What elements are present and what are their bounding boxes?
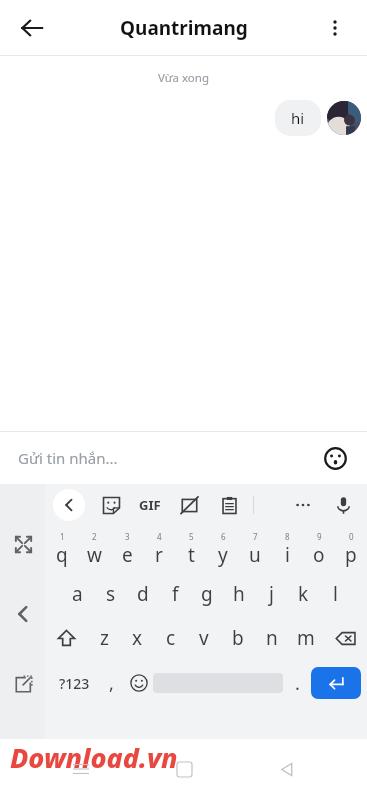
staticText: d xyxy=(137,581,149,607)
staticText: q xyxy=(56,542,68,568)
staticText: o xyxy=(313,542,325,568)
button[interactable]: Enter xyxy=(311,667,361,699)
button[interactable]: More xyxy=(289,491,317,519)
button[interactable]: Expand keyboard xyxy=(5,526,41,562)
button[interactable]: m xyxy=(289,616,323,660)
button[interactable]: , xyxy=(97,660,125,706)
staticText: v xyxy=(199,625,209,651)
button[interactable]: x xyxy=(121,616,154,660)
button[interactable]: g xyxy=(191,572,223,616)
button[interactable]: Shift xyxy=(45,616,88,660)
button[interactable]: . xyxy=(283,660,311,706)
button[interactable]: Translate off xyxy=(175,491,203,519)
staticText: 6 xyxy=(221,531,226,542)
staticText: 3 xyxy=(125,531,130,542)
staticText: u xyxy=(249,542,261,568)
button[interactable]: 0 xyxy=(335,526,367,572)
staticText: 0 xyxy=(349,531,354,542)
button[interactable]: Home xyxy=(163,753,205,785)
button[interactable]: Back xyxy=(8,4,56,52)
button[interactable]: Stickers xyxy=(97,491,125,519)
staticText: r xyxy=(155,542,163,568)
staticText: g xyxy=(201,581,213,607)
staticText: 7 xyxy=(253,531,258,542)
staticText: l xyxy=(333,581,338,607)
staticText: 2 xyxy=(92,531,97,542)
button[interactable]: 4 xyxy=(143,526,175,572)
staticText: h xyxy=(233,581,245,607)
staticText: w xyxy=(87,542,102,568)
staticText: e xyxy=(122,542,133,568)
button[interactable]: 8 xyxy=(271,526,303,572)
staticText: hi xyxy=(291,108,305,128)
button[interactable]: Floating keyboard xyxy=(5,666,41,702)
button[interactable]: z xyxy=(88,616,121,660)
staticText: i xyxy=(285,542,290,568)
button[interactable]: More options xyxy=(311,4,359,52)
button[interactable]: GIF xyxy=(137,491,163,519)
staticText: j xyxy=(269,581,274,607)
button[interactable]: Emoji xyxy=(125,660,153,706)
button[interactable]: Back xyxy=(265,753,307,785)
button[interactable]: 6 xyxy=(207,526,239,572)
button[interactable]: Gửi tin nhắn... xyxy=(18,448,118,468)
staticText: a xyxy=(72,581,83,607)
button[interactable]: f xyxy=(159,572,191,616)
button[interactable]: d xyxy=(127,572,159,616)
staticText: p xyxy=(345,542,357,568)
button[interactable]: j xyxy=(255,572,287,616)
button[interactable]: s xyxy=(94,572,127,616)
staticText: f xyxy=(172,581,179,607)
staticText: 8 xyxy=(285,531,290,542)
staticText: , xyxy=(109,671,114,696)
button[interactable]: Voice input xyxy=(329,491,357,519)
button[interactable]: 2 xyxy=(78,526,111,572)
button[interactable]: b xyxy=(221,616,255,660)
button[interactable]: a xyxy=(61,572,94,616)
button[interactable]: Profile photo xyxy=(327,101,361,135)
button[interactable]: Clipboard xyxy=(215,491,243,519)
staticText: 4 xyxy=(157,531,162,542)
button[interactable]: l xyxy=(319,572,351,616)
staticText: k xyxy=(298,581,309,607)
button[interactable]: n xyxy=(255,616,289,660)
staticText: GIF xyxy=(139,496,161,514)
button[interactable]: Emoji xyxy=(317,440,353,476)
button[interactable]: 1 xyxy=(45,526,78,572)
button[interactable]: Backspace xyxy=(323,616,367,660)
staticText: z xyxy=(100,625,109,651)
staticText: m xyxy=(297,625,315,651)
button[interactable]: 3 xyxy=(111,526,143,572)
staticText: Download.vn xyxy=(10,739,178,776)
button[interactable]: k xyxy=(287,572,319,616)
staticText: Vừa xong xyxy=(0,70,367,86)
button[interactable]: 7 xyxy=(239,526,271,572)
staticText: 9 xyxy=(317,531,322,542)
button[interactable]: h xyxy=(223,572,255,616)
button[interactable]: 9 xyxy=(303,526,335,572)
staticText: ?123 xyxy=(59,674,90,693)
staticText: n xyxy=(266,625,278,651)
staticText: . xyxy=(295,671,300,696)
staticText: Quantrimang xyxy=(120,15,248,41)
staticText: x xyxy=(132,625,143,651)
button[interactable]: Recents xyxy=(60,753,102,785)
button[interactable]: v xyxy=(187,616,221,660)
staticText: s xyxy=(106,581,116,607)
staticText: b xyxy=(232,625,244,651)
button[interactable]: hi xyxy=(275,100,321,136)
staticText: y xyxy=(218,542,228,568)
button[interactable]: 5 xyxy=(175,526,207,572)
staticText: t xyxy=(188,542,195,568)
staticText: 5 xyxy=(189,531,194,542)
button[interactable]: Back xyxy=(53,489,85,521)
button[interactable]: ?123 xyxy=(51,660,97,706)
button[interactable]: Previous xyxy=(5,596,41,632)
staticText: 1 xyxy=(60,531,65,542)
button[interactable]: c xyxy=(154,616,187,660)
staticText: c xyxy=(166,625,176,651)
